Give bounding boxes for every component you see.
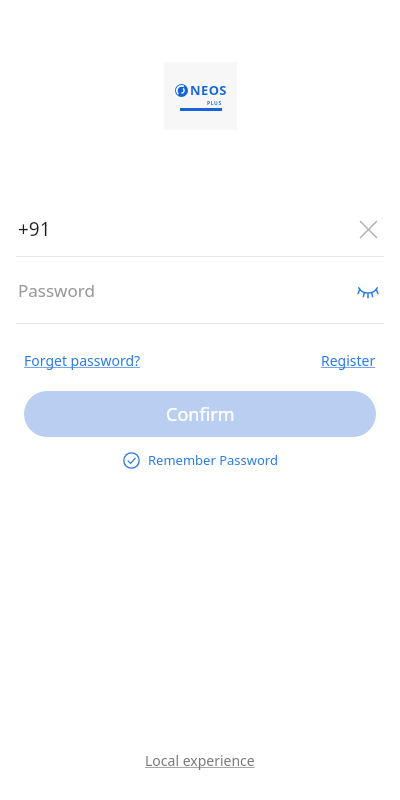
button[interactable]: Confirm <box>24 391 376 437</box>
staticText: Confirm <box>166 402 235 427</box>
staticText: Remember Password <box>148 451 278 469</box>
staticText: +91 <box>18 216 51 242</box>
button[interactable]: Register <box>321 351 376 370</box>
staticText: Forget password? <box>24 351 141 370</box>
button[interactable]: +91 <box>0 202 400 256</box>
button[interactable]: Remember Password <box>117 447 284 473</box>
staticText: Register <box>321 351 376 370</box>
staticText: PLUS <box>207 100 222 107</box>
button[interactable]: Local experience <box>139 745 261 776</box>
button[interactable]: Show password <box>350 272 386 308</box>
staticText: Password <box>18 279 95 302</box>
staticText: Local experience <box>145 751 255 770</box>
button[interactable]: Clear phone number <box>350 211 386 247</box>
staticText: NEOS <box>190 81 227 99</box>
button[interactable]: Password <box>0 257 400 323</box>
button[interactable]: Forget password? <box>24 351 141 370</box>
